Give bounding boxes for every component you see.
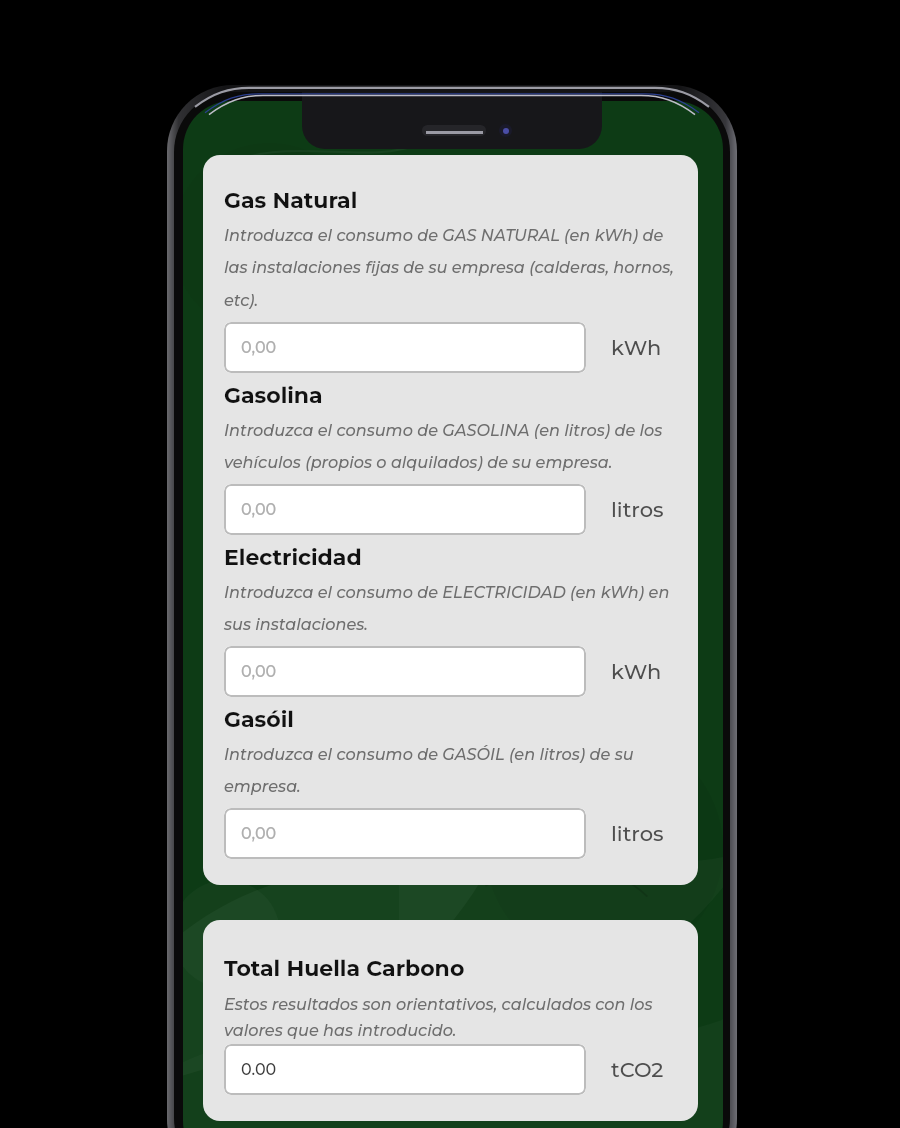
staticText: Gasolina (224, 382, 323, 409)
staticText: kWh (611, 659, 662, 685)
staticText: 0,00 (241, 824, 277, 844)
staticText: Introduzca el consumo de GAS NATURAL (en… (224, 225, 678, 310)
button[interactable]: 0,00 (224, 646, 586, 697)
staticText: Introduzca el consumo de GASOLINA (en li… (224, 420, 678, 472)
staticText: Total Huella Carbono (224, 955, 465, 982)
staticText: litros (611, 497, 664, 523)
staticText: 0,00 (241, 662, 277, 682)
staticText: 0,00 (241, 500, 277, 520)
staticText: Gas Natural (224, 187, 358, 214)
button[interactable]: 0,00 (224, 484, 586, 535)
staticText: Electricidad (224, 544, 362, 571)
staticText: Introduzca el consumo de GASÓIL (en litr… (224, 744, 678, 796)
staticText: 0,00 (241, 338, 277, 358)
button[interactable]: 0.00 (224, 1044, 586, 1095)
staticText: litros (611, 821, 664, 847)
staticText: Introduzca el consumo de ELECTRICIDAD (e… (224, 582, 678, 634)
staticText: Gasóil (224, 706, 294, 733)
staticText: Estos resultados son orientativos, calcu… (224, 994, 678, 1040)
button[interactable]: 0,00 (224, 322, 586, 373)
button[interactable]: 0,00 (224, 808, 586, 859)
staticText: kWh (611, 335, 662, 361)
staticText: tCO2 (611, 1057, 664, 1083)
staticText: 0.00 (241, 1060, 277, 1080)
